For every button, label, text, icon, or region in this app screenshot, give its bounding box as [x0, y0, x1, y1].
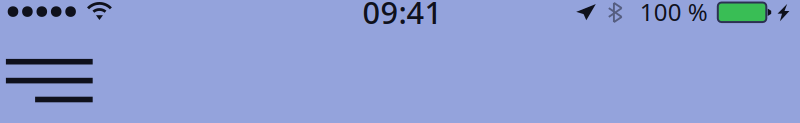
- staticText: 100 %: [640, 0, 708, 28]
- button[interactable]: Menu: [0, 0, 103, 112]
- staticText: 09:41: [363, 0, 443, 32]
